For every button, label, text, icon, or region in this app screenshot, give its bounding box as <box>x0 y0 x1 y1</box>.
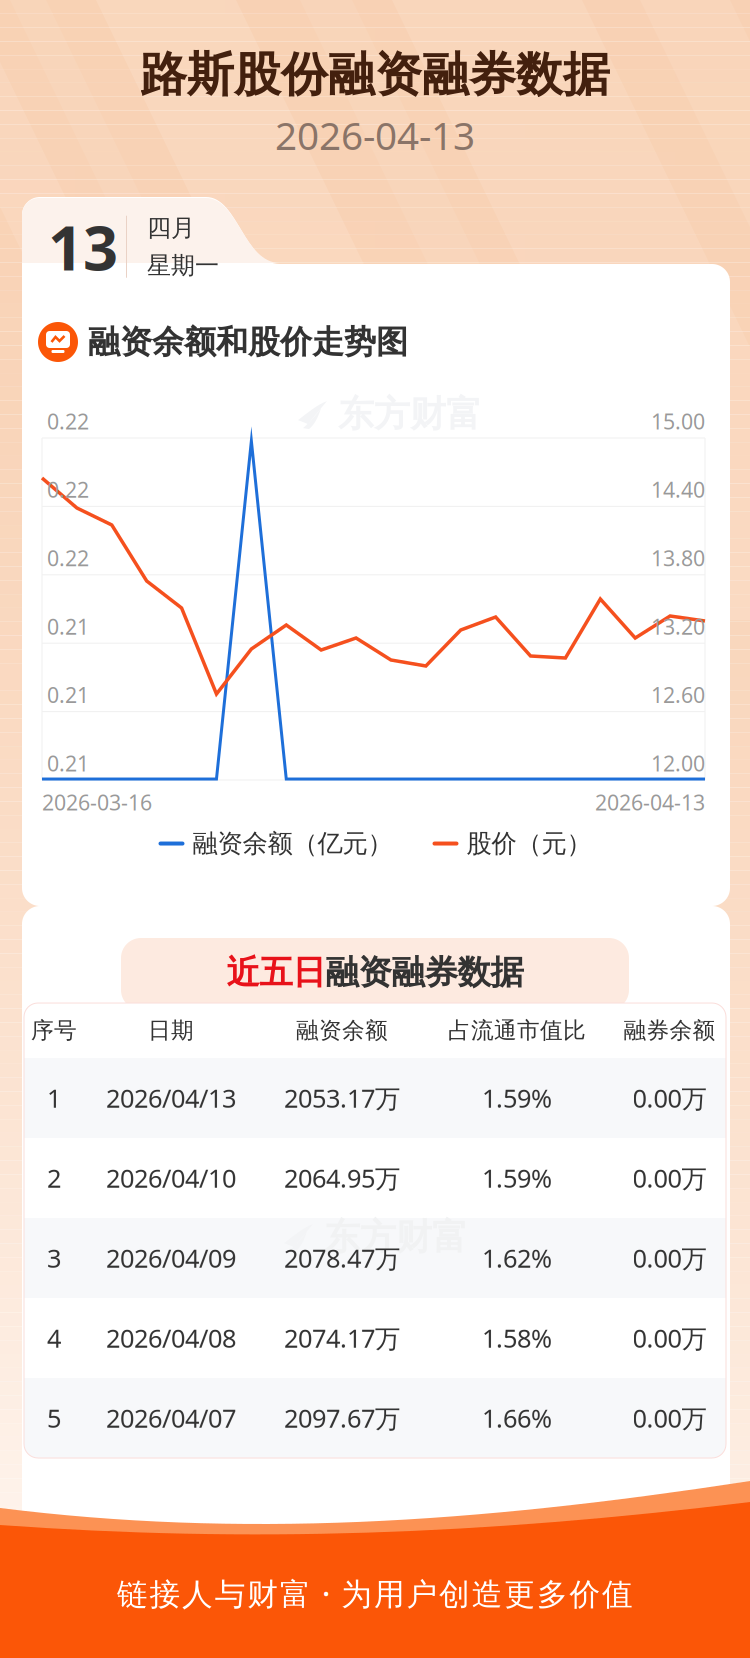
staticText: 13.80 <box>651 544 705 572</box>
staticText: 链接人与财富 · 为用户创造更多价值 <box>117 1573 633 1614</box>
staticText: 1.62% <box>482 1241 552 1275</box>
staticText: 0.22 <box>47 407 89 435</box>
staticText: 东方财富 <box>324 1215 468 1259</box>
staticText: 四月 <box>147 213 195 243</box>
staticText: 2026-03-16 <box>42 788 152 816</box>
staticText: 2074.17万 <box>284 1321 400 1355</box>
staticText: 12.00 <box>651 749 705 777</box>
staticText: 2097.67万 <box>284 1401 400 1435</box>
staticText: 融资余额和股价走势图 <box>88 322 408 362</box>
staticText: 4 <box>47 1321 61 1355</box>
staticText: 15.00 <box>651 407 705 435</box>
staticText: 13 <box>48 206 118 287</box>
staticText: 2053.17万 <box>284 1081 400 1115</box>
staticText: 近五日 <box>226 952 325 993</box>
staticText: 2026-04-13 <box>275 109 475 161</box>
button[interactable]: 5 <box>24 1378 726 1458</box>
staticText: 1.58% <box>482 1321 552 1355</box>
staticText: 日期 <box>148 1017 194 1044</box>
staticText: 东方财富 <box>338 392 482 436</box>
button[interactable]: 4 <box>24 1298 726 1378</box>
staticText: 14.40 <box>651 475 705 504</box>
button[interactable]: 融资余额和股价走势图 <box>38 322 408 362</box>
staticText: 融券余额 <box>623 1017 715 1044</box>
staticText: 0.00万 <box>632 1241 706 1275</box>
staticText: 2078.47万 <box>284 1241 400 1275</box>
staticText: 13.20 <box>651 612 705 640</box>
button[interactable]: 1 <box>24 1058 726 1138</box>
staticText: 0.00万 <box>632 1401 706 1435</box>
staticText: 5 <box>47 1401 61 1435</box>
staticText: 序号 <box>31 1017 77 1044</box>
staticText: 0.00万 <box>632 1161 706 1195</box>
staticText: 路斯股份融资融券数据 <box>140 46 610 103</box>
staticText: 1.59% <box>482 1161 552 1195</box>
staticText: 1.59% <box>482 1081 552 1115</box>
staticText: 占流通市值比 <box>448 1017 586 1044</box>
staticText: 0.00万 <box>632 1321 706 1355</box>
staticText: 2 <box>47 1161 61 1195</box>
button[interactable]: 2 <box>24 1138 726 1218</box>
staticText: 融资余额 <box>296 1017 388 1044</box>
staticText: 融资融券数据 <box>325 952 523 993</box>
staticText: 0.21 <box>47 749 89 777</box>
staticText: 星期一 <box>147 251 219 280</box>
staticText: 0.21 <box>47 681 89 709</box>
staticText: 2064.95万 <box>284 1161 400 1195</box>
staticText: 股价（元） <box>466 828 591 859</box>
staticText: 3 <box>47 1241 61 1275</box>
staticText: 2026-04-13 <box>595 788 705 816</box>
staticText: 0.21 <box>47 612 89 640</box>
staticText: 2026/04/10 <box>106 1161 236 1195</box>
staticText: 12.60 <box>651 681 705 709</box>
staticText: 0.00万 <box>632 1081 706 1115</box>
staticText: 2026/04/07 <box>106 1401 236 1435</box>
staticText: 0.22 <box>47 475 89 504</box>
button[interactable]: 3 <box>24 1218 726 1298</box>
staticText: 0.22 <box>47 544 89 572</box>
staticText: 2026/04/08 <box>106 1321 236 1355</box>
staticText: 1.66% <box>482 1401 552 1435</box>
staticText: 1 <box>47 1081 61 1115</box>
staticText: 融资余额（亿元） <box>192 828 392 859</box>
button[interactable]: 13 <box>40 206 219 287</box>
staticText: 2026/04/09 <box>106 1241 236 1275</box>
staticText: 2026/04/13 <box>106 1081 236 1115</box>
